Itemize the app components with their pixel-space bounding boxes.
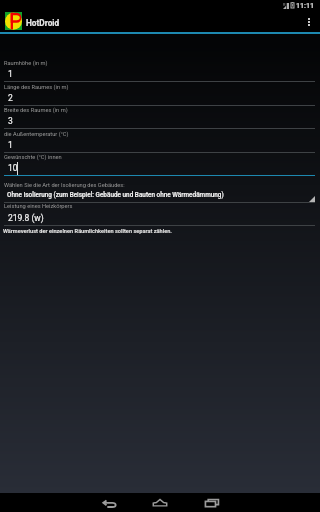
button[interactable]: Länge des Raumes (in m)	[0, 84, 320, 106]
button[interactable]: Raumhöhe (in m)	[0, 60, 320, 82]
staticText: Wärmeverlust der einzelnen Räumlichkeite…	[3, 228, 172, 235]
staticText: Breite des Raumes (in m)	[4, 107, 68, 114]
staticText: HotDroid	[26, 18, 60, 28]
staticText: Leistung eines Heizkörpers	[4, 203, 73, 210]
staticText: die Außentemperatur (°C)	[4, 131, 69, 138]
staticText: Wählen Sie die Art der Isolierung des Ge…	[4, 182, 125, 189]
button[interactable]: Ohne Isolierung (zum Beispiel: Gebäude u…	[0, 191, 320, 202]
staticText: Gewünschte (°C) innen	[4, 154, 62, 161]
button[interactable]: Back	[92, 493, 126, 512]
staticText: 1	[8, 140, 13, 150]
staticText: 2	[8, 93, 13, 103]
button[interactable]: Home	[143, 493, 177, 512]
staticText: Ohne Isolierung (zum Beispiel: Gebäude u…	[7, 191, 224, 199]
staticText: 10	[8, 163, 18, 173]
button[interactable]: die Außentemperatur (°C)	[0, 131, 320, 153]
staticText: Länge des Raumes (in m)	[4, 84, 69, 91]
button[interactable]: Recent apps	[194, 493, 228, 512]
staticText: Raumhöhe (in m)	[4, 60, 48, 67]
staticText: 219.8 (w)	[8, 213, 44, 223]
button[interactable]: Breite des Raumes (in m)	[0, 107, 320, 129]
staticText: 3	[8, 116, 13, 126]
button[interactable]: Gewünschte (°C) innen	[0, 154, 320, 176]
staticText: 1	[8, 69, 13, 79]
staticText: 11:11	[296, 2, 315, 10]
button[interactable]: More options	[298, 11, 320, 32]
